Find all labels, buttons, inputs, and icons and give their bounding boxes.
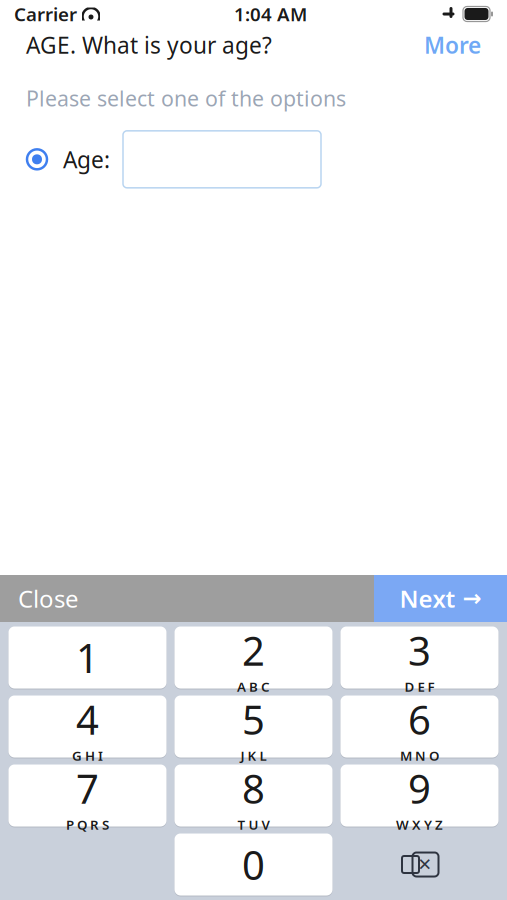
staticText: Age: xyxy=(63,144,110,174)
button[interactable]: 9 xyxy=(340,763,498,827)
staticText: G H I xyxy=(72,747,103,764)
staticText: A B C xyxy=(237,678,270,695)
staticText: Carrier xyxy=(14,2,77,26)
staticText: 3 xyxy=(408,624,431,677)
button[interactable]: 1 xyxy=(8,625,166,689)
button[interactable]: Next xyxy=(374,575,507,622)
staticText: 8 xyxy=(242,762,265,815)
button[interactable]: 3 xyxy=(340,625,498,689)
staticText: ✕ xyxy=(417,855,432,874)
button[interactable]: Age: xyxy=(0,112,507,188)
staticText: 4 xyxy=(76,693,99,746)
button[interactable]: 5 xyxy=(174,694,332,758)
button[interactable]: 7 xyxy=(8,763,166,827)
button[interactable]: More xyxy=(424,30,481,60)
staticText: P Q R S xyxy=(66,816,109,833)
button[interactable]: 6 xyxy=(340,694,498,758)
staticText: 1 xyxy=(76,631,99,684)
staticText: W X Y Z xyxy=(396,816,443,833)
staticText: AGE. What is your age? xyxy=(26,30,272,60)
button[interactable]: 8 xyxy=(174,763,332,827)
button[interactable]: ✕ xyxy=(340,832,498,896)
button[interactable]: 4 xyxy=(8,694,166,758)
staticText: T U V xyxy=(237,816,269,833)
staticText: 9 xyxy=(408,762,431,815)
staticText: 7 xyxy=(76,762,99,815)
button[interactable]: 2 xyxy=(174,625,332,689)
button[interactable]: 0 xyxy=(174,832,332,896)
staticText: D E F xyxy=(404,678,434,695)
staticText: More xyxy=(424,30,481,60)
staticText: 6 xyxy=(408,693,431,746)
staticText: Next xyxy=(399,583,455,614)
button[interactable]: Close xyxy=(0,575,374,622)
staticText: Please select one of the options xyxy=(26,84,346,112)
staticText: 1:04 AM xyxy=(234,2,307,26)
staticText: 2 xyxy=(242,624,265,677)
staticText: J K L xyxy=(240,747,266,764)
staticText: → xyxy=(462,586,481,611)
staticText: 5 xyxy=(242,693,265,746)
staticText: M N O xyxy=(400,747,439,764)
staticText: 0 xyxy=(242,838,265,891)
staticText: Close xyxy=(18,583,79,614)
